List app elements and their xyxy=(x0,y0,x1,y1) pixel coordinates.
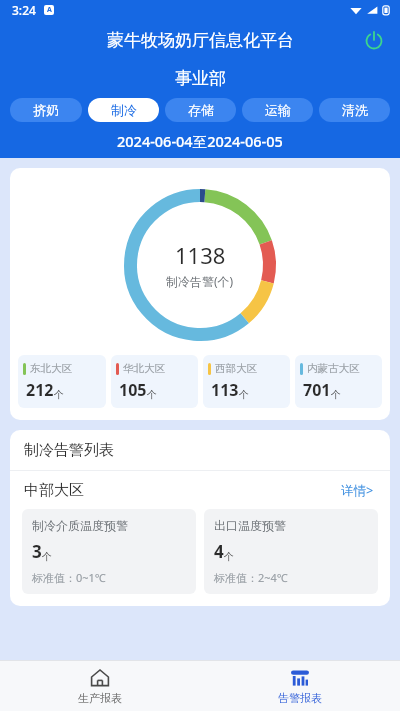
staticText: 事业部 xyxy=(175,68,226,89)
staticText: 东北大区 xyxy=(30,362,72,375)
staticText: 个 xyxy=(54,388,64,401)
staticText: 701 xyxy=(303,379,331,401)
staticText: 制冷 xyxy=(111,102,137,118)
other: Production report xyxy=(90,668,110,688)
button[interactable]: 制冷 xyxy=(88,98,159,122)
staticText: 西部大区 xyxy=(215,362,257,375)
button[interactable]: 东北大区 xyxy=(18,355,106,408)
staticText: 制冷告警列表 xyxy=(24,441,114,460)
staticText: 3 xyxy=(32,540,42,563)
staticText: 生产报表 xyxy=(78,691,122,705)
staticText: 113 xyxy=(211,379,239,401)
staticText: 中部大区 xyxy=(24,481,84,500)
staticText: 内蒙古大区 xyxy=(307,362,360,375)
staticText: 1138 xyxy=(175,240,226,270)
staticText: 清洗 xyxy=(342,102,368,118)
button[interactable]: 详情> xyxy=(339,478,376,503)
button[interactable]: 清洗 xyxy=(319,98,390,122)
button[interactable]: 挤奶 xyxy=(10,98,82,122)
button[interactable]: 内蒙古大区 xyxy=(295,355,382,408)
staticText: 4 xyxy=(214,540,224,563)
button[interactable]: 存储 xyxy=(165,98,236,122)
staticText: 详情> xyxy=(341,482,374,499)
staticText: 个 xyxy=(42,550,52,563)
staticText: 告警报表 xyxy=(278,691,322,705)
staticText: 标准值：0~1℃ xyxy=(32,570,106,585)
staticText: 个 xyxy=(239,388,249,401)
staticText: 存储 xyxy=(188,102,214,118)
staticText: 212 xyxy=(26,379,54,401)
button[interactable]: 制冷介质温度预警 xyxy=(22,509,196,594)
staticText: 3:24 xyxy=(12,2,36,18)
button[interactable]: Power / Logout xyxy=(360,26,388,54)
other: Alarm report xyxy=(290,668,310,688)
staticText: 个 xyxy=(147,388,157,401)
staticText: 蒙牛牧场奶厅信息化平台 xyxy=(107,30,294,51)
button[interactable]: 运输 xyxy=(242,98,313,122)
staticText: 制冷告警(个) xyxy=(166,273,234,289)
staticText: 运输 xyxy=(265,102,291,118)
button[interactable]: 出口温度预警 xyxy=(204,509,378,594)
button[interactable]: 2024-06-04至2024-06-05 xyxy=(117,131,283,151)
staticText: 个 xyxy=(331,388,341,401)
button[interactable]: 西部大区 xyxy=(203,355,290,408)
staticText: 华北大区 xyxy=(123,362,165,375)
staticText: 挤奶 xyxy=(33,102,59,118)
staticText: 个 xyxy=(224,550,234,563)
staticText: 制冷介质温度预警 xyxy=(32,518,128,533)
staticText: A xyxy=(47,5,52,15)
staticText: 105 xyxy=(119,379,147,401)
staticText: 出口温度预警 xyxy=(214,518,286,533)
button[interactable]: Alarm report xyxy=(200,661,400,711)
button[interactable]: 华北大区 xyxy=(111,355,198,408)
staticText: 标准值：2~4℃ xyxy=(214,570,288,585)
button[interactable]: Production report xyxy=(0,661,200,711)
